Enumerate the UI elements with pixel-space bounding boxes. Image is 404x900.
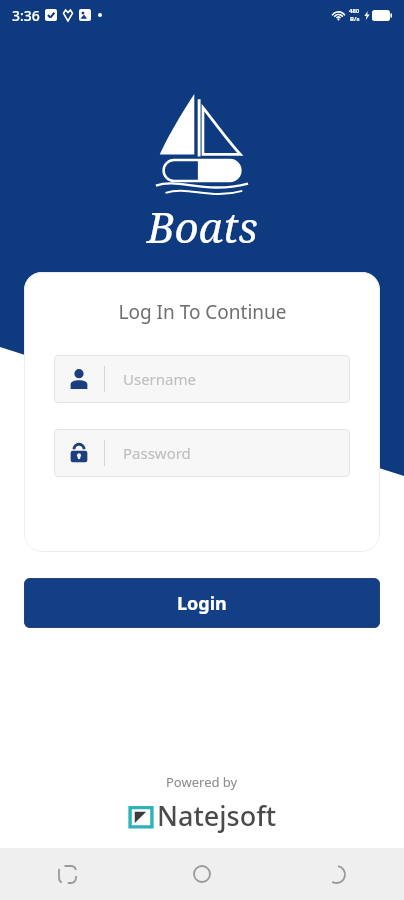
staticText: Username (123, 369, 196, 389)
staticText: Login (177, 591, 227, 616)
button[interactable]: Username (54, 355, 350, 403)
staticText: 480 (349, 7, 360, 15)
staticText: B/s (350, 15, 360, 23)
staticText: Log In To Continue (118, 299, 287, 325)
button[interactable]: Password (54, 429, 350, 477)
staticText: Password (123, 443, 191, 463)
staticText: Boats (147, 198, 258, 255)
staticText: Natejsoft (157, 797, 277, 834)
staticText: Powered by (166, 773, 238, 791)
button[interactable]: Recents (0, 848, 134, 900)
button[interactable]: Home (134, 848, 269, 900)
button[interactable]: Login (24, 578, 380, 628)
staticText: 3:36 (12, 6, 40, 25)
button[interactable]: Back (269, 848, 404, 900)
